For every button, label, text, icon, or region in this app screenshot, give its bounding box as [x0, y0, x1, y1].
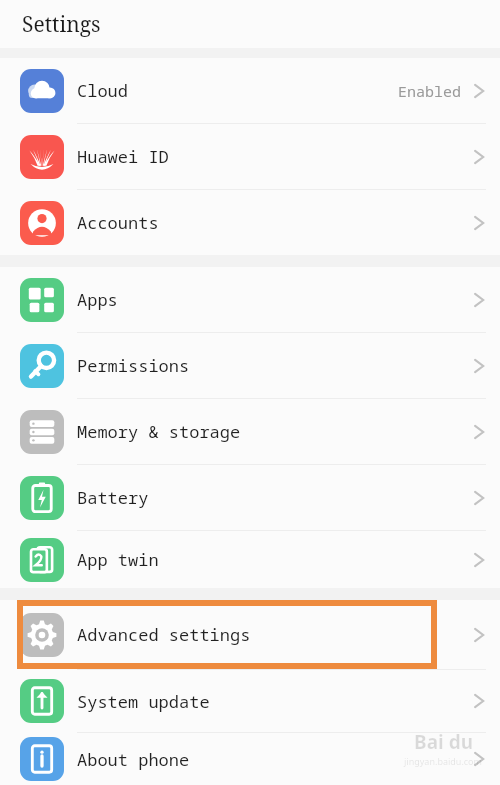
button[interactable]: Huawei ID [0, 124, 500, 189]
staticText: Apps [77, 288, 118, 311]
staticText: Enabled [398, 81, 462, 101]
staticText: Permissions [77, 354, 190, 377]
staticText: Battery [77, 486, 149, 509]
button[interactable]: Battery [0, 465, 500, 530]
button[interactable]: Permissions [0, 333, 500, 398]
staticText: Huawei ID [77, 145, 169, 168]
button[interactable]: Cloud [0, 58, 500, 123]
button[interactable]: App twin [0, 531, 500, 588]
staticText: jingyan.baidu.com [404, 755, 482, 767]
button[interactable]: Accounts [0, 190, 500, 255]
button[interactable]: Memory & storage [0, 399, 500, 464]
staticText: Cloud [77, 79, 128, 102]
button[interactable]: Apps [0, 267, 500, 332]
staticText: System update [77, 690, 210, 713]
staticText: Settings [22, 10, 101, 39]
staticText: About phone [77, 748, 190, 771]
button[interactable]: System update [0, 670, 500, 732]
button[interactable]: About phone [0, 733, 500, 785]
staticText: Bai du [414, 729, 473, 755]
staticText: App twin [77, 548, 159, 571]
staticText: Memory & storage [77, 420, 241, 443]
staticText: Advanced settings [77, 623, 251, 646]
button[interactable]: Advanced settings [0, 600, 500, 669]
staticText: Accounts [77, 211, 159, 234]
